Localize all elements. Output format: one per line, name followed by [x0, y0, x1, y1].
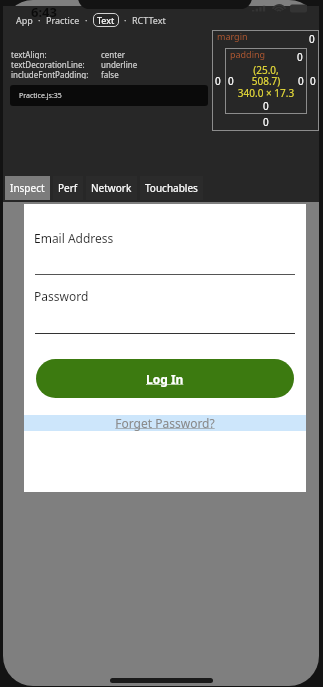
staticText: Inspect: [10, 181, 45, 195]
button[interactable]: Practice.js:35: [10, 85, 208, 106]
staticText: Practice.js:35: [19, 91, 62, 101]
staticText: 0: [215, 74, 221, 88]
button[interactable]: Text: [93, 13, 119, 27]
staticText: textDecorationLine:: [11, 59, 85, 69]
staticText: margin: [217, 30, 248, 42]
staticText: includeFontPadding:: [11, 69, 89, 79]
staticText: (25.0, 508.7) 340.0 × 17.3: [225, 63, 307, 100]
staticText: Touchables: [145, 181, 198, 195]
staticText: ·: [124, 14, 127, 26]
staticText: RCTText: [132, 14, 166, 26]
staticText: underline: [101, 59, 138, 69]
button[interactable]: Network: [86, 176, 137, 200]
button[interactable]: Forget Password?: [24, 415, 306, 431]
staticText: Perf: [58, 181, 78, 195]
staticText: 0: [309, 32, 315, 46]
staticText: center: [101, 49, 125, 59]
staticText: Practice: [46, 14, 80, 26]
staticText: 0: [263, 115, 269, 129]
other: Status icons: [252, 3, 308, 15]
staticText: Email Address: [34, 230, 114, 246]
staticText: 0: [297, 50, 303, 64]
staticText: Password: [34, 288, 89, 304]
button[interactable]: Log In: [36, 359, 294, 398]
staticText: ·: [85, 14, 88, 26]
staticText: Text: [97, 14, 115, 26]
staticText: Log In: [146, 371, 184, 387]
staticText: Forget Password?: [115, 415, 215, 431]
staticText: padding: [230, 48, 266, 60]
button[interactable]: Inspect: [5, 176, 50, 200]
staticText: 6:43: [31, 3, 57, 21]
staticText: ·: [38, 14, 41, 26]
staticText: 0: [263, 99, 269, 113]
staticText: 0: [310, 74, 316, 88]
staticText: App: [16, 14, 33, 26]
staticText: false: [101, 69, 119, 79]
button[interactable]: Touchables: [140, 176, 203, 200]
staticText: textAlign:: [11, 49, 47, 59]
staticText: Network: [91, 181, 132, 195]
staticText: 0: [298, 74, 304, 88]
button[interactable]: Perf: [53, 176, 83, 200]
staticText: 0: [228, 74, 234, 88]
